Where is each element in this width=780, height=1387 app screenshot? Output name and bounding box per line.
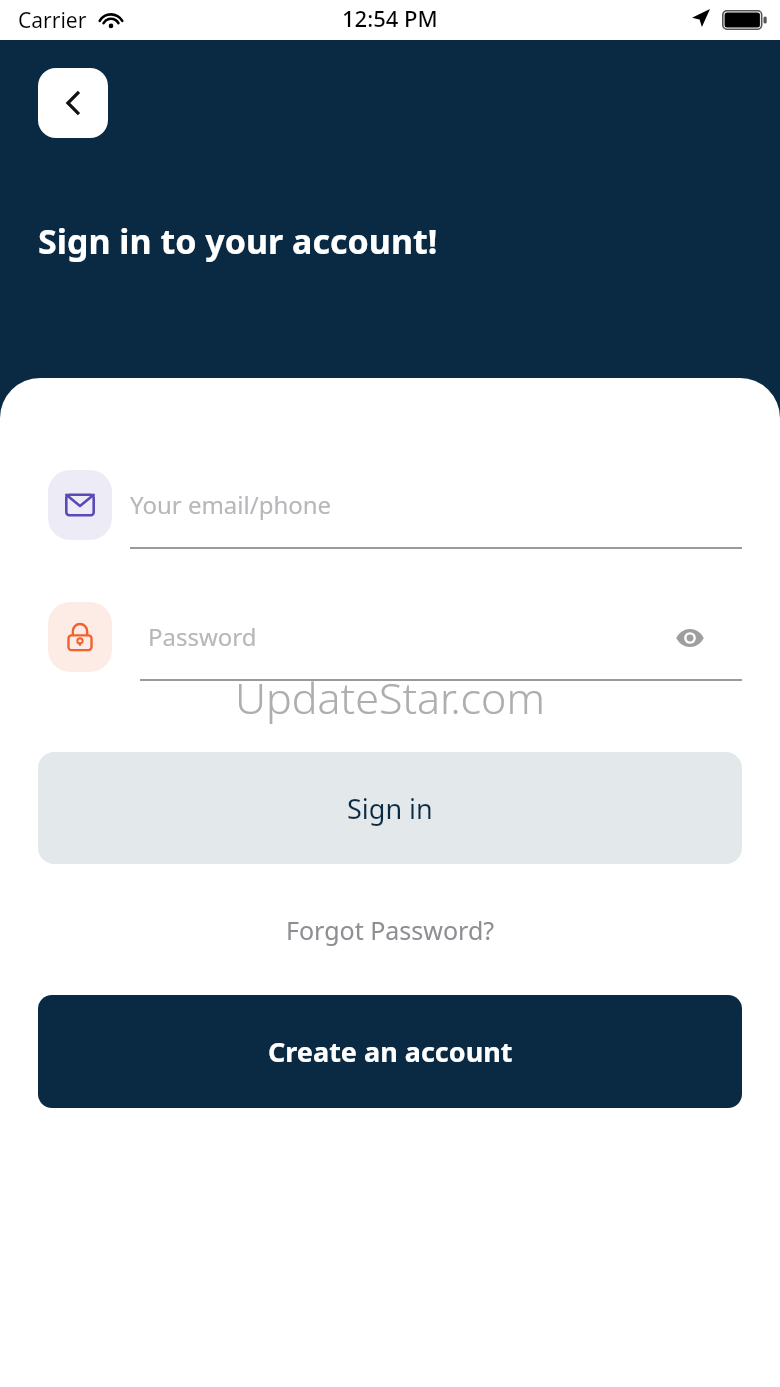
staticText: 12:54 PM [342, 3, 438, 33]
button[interactable]: Show password [662, 610, 718, 666]
button[interactable]: Password [38, 594, 742, 686]
button[interactable]: Create an account [38, 995, 742, 1108]
staticText: Your email/phone [130, 488, 332, 521]
button[interactable]: Your email/phone [38, 462, 742, 554]
button[interactable]: Sign in [38, 752, 742, 864]
button[interactable]: Forgot Password? [274, 907, 507, 953]
staticText: Sign in to your account! [38, 218, 438, 264]
staticText: UpdateStar.com [235, 668, 545, 727]
staticText: Carrier [18, 6, 87, 35]
button[interactable]: Back [38, 68, 108, 138]
staticText: Forgot Password? [286, 913, 495, 947]
staticText: Sign in [347, 790, 433, 827]
staticText: Password [148, 620, 257, 653]
staticText: Create an account [268, 1033, 513, 1070]
